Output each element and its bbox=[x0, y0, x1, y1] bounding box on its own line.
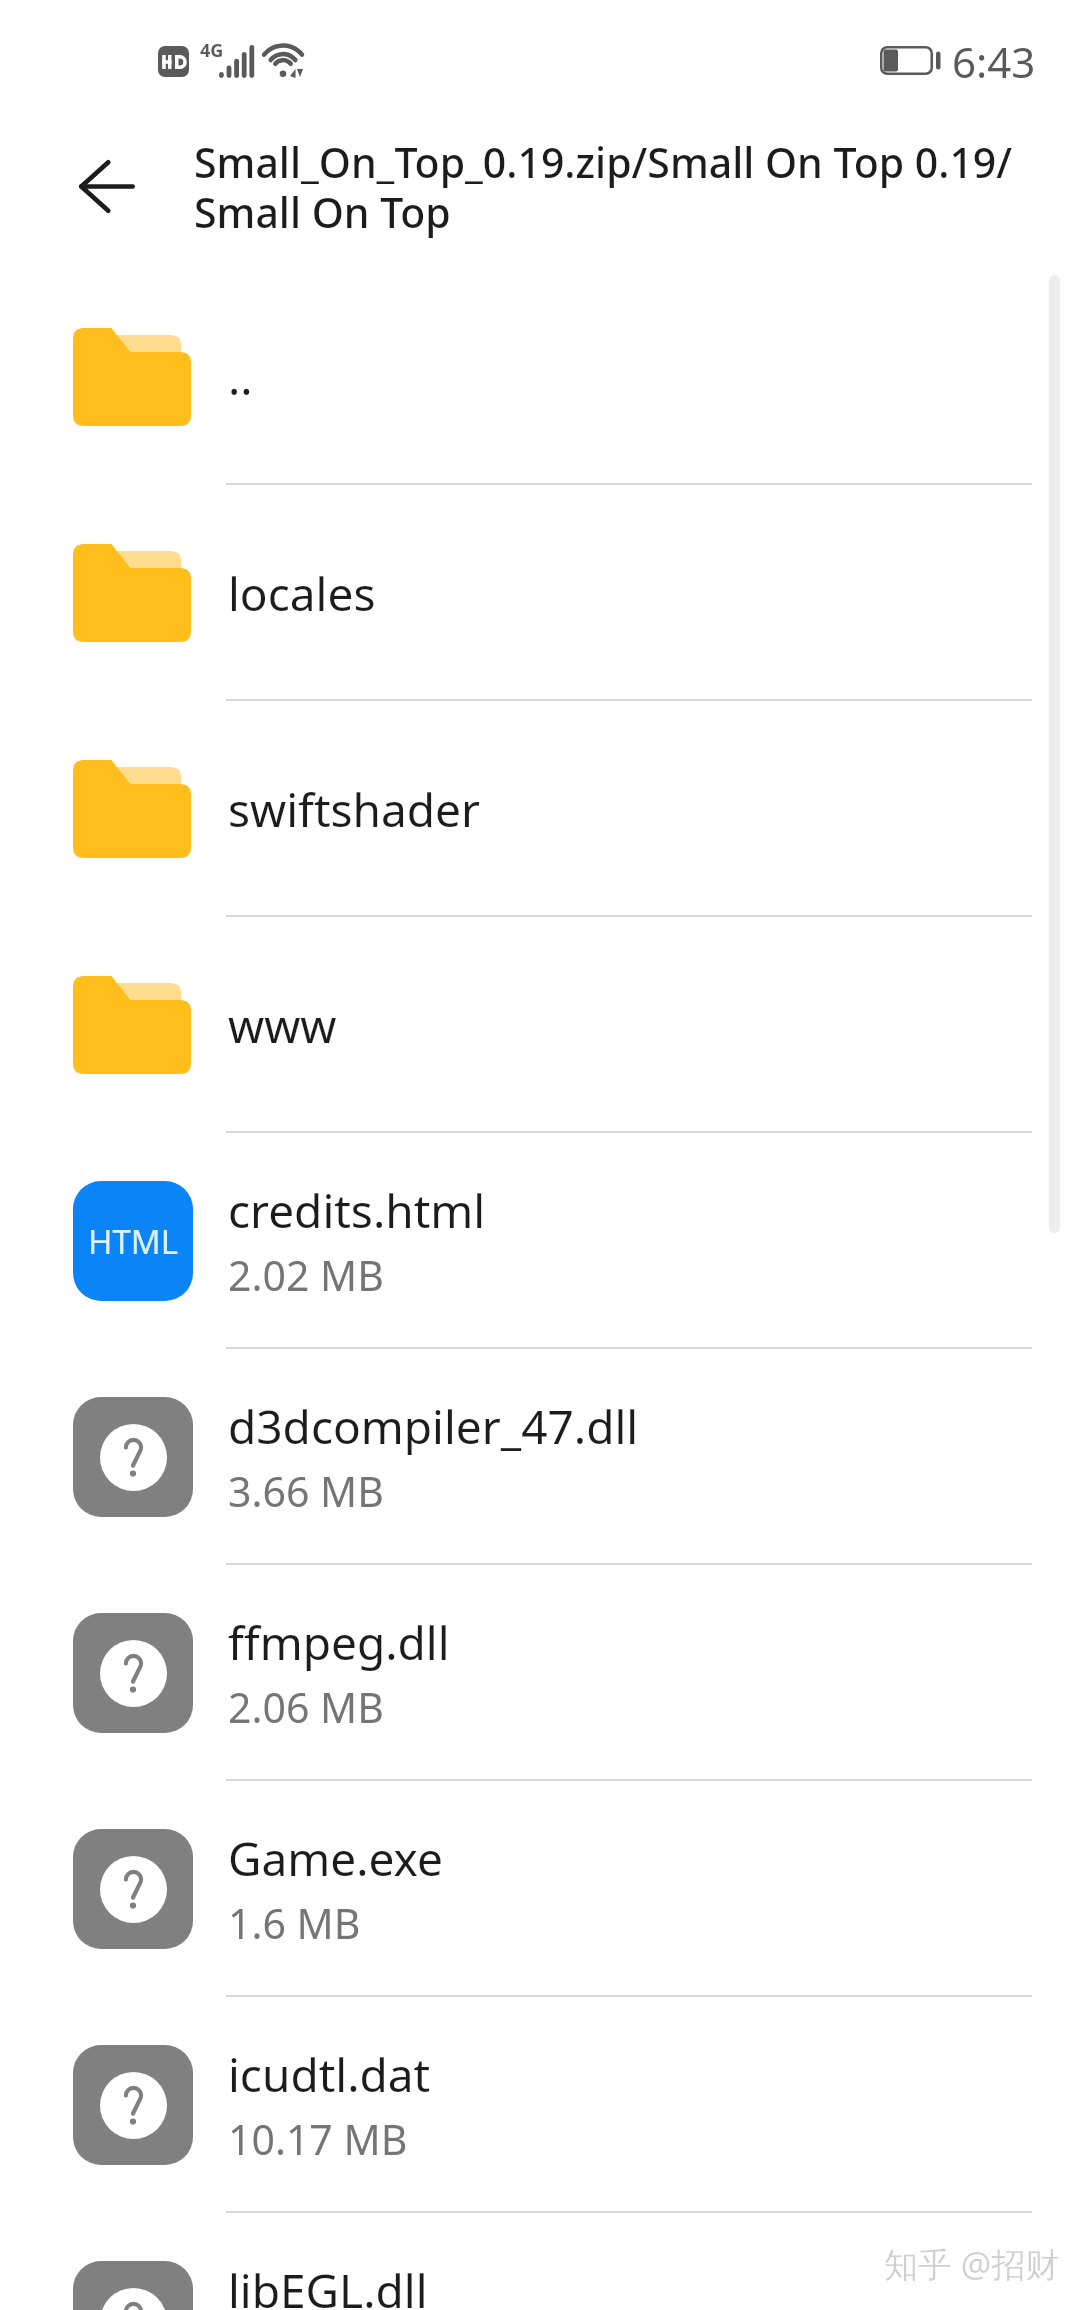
staticText: Game.exe bbox=[228, 1827, 443, 1890]
staticText: 6:43 bbox=[952, 33, 1036, 90]
staticText: swiftshader bbox=[228, 778, 480, 841]
staticText: ffmpeg.dll bbox=[228, 1611, 450, 1674]
staticText: Small_On_Top_0.19.zip/Small On Top 0.19/… bbox=[194, 134, 1054, 240]
staticText: d3dcompiler_47.dll bbox=[228, 1395, 639, 1458]
button[interactable]: HTML bbox=[0, 1133, 1080, 1349]
button[interactable]: Back bbox=[30, 138, 184, 234]
staticText: 2.06 MB bbox=[228, 1679, 384, 1735]
staticText: credits.html bbox=[228, 1179, 486, 1242]
button[interactable]: Game.exe bbox=[0, 1781, 1080, 1997]
button[interactable]: www bbox=[0, 917, 1080, 1133]
staticText: HTML bbox=[88, 1219, 179, 1264]
button[interactable]: d3dcompiler_47.dll bbox=[0, 1349, 1080, 1565]
button[interactable]: .. bbox=[0, 269, 1080, 485]
staticText: .. bbox=[228, 346, 253, 409]
button[interactable]: libEGL.dll bbox=[0, 2213, 1080, 2310]
staticText: 3.66 MB bbox=[228, 1463, 384, 1519]
staticText: locales bbox=[228, 562, 376, 625]
button[interactable]: swiftshader bbox=[0, 701, 1080, 917]
staticText: www bbox=[228, 994, 337, 1057]
staticText: 1.6 MB bbox=[228, 1895, 361, 1951]
staticText: 10.17 MB bbox=[228, 2111, 408, 2167]
staticText: libEGL.dll bbox=[228, 2259, 428, 2310]
staticText: 知乎 @招财 bbox=[884, 2241, 1060, 2287]
button[interactable]: ffmpeg.dll bbox=[0, 1565, 1080, 1781]
staticText: icudtl.dat bbox=[228, 2043, 431, 2106]
button[interactable]: icudtl.dat bbox=[0, 1997, 1080, 2213]
button[interactable]: locales bbox=[0, 485, 1080, 701]
staticText: 2.02 MB bbox=[228, 1247, 384, 1303]
staticText: 4G bbox=[200, 38, 224, 63]
